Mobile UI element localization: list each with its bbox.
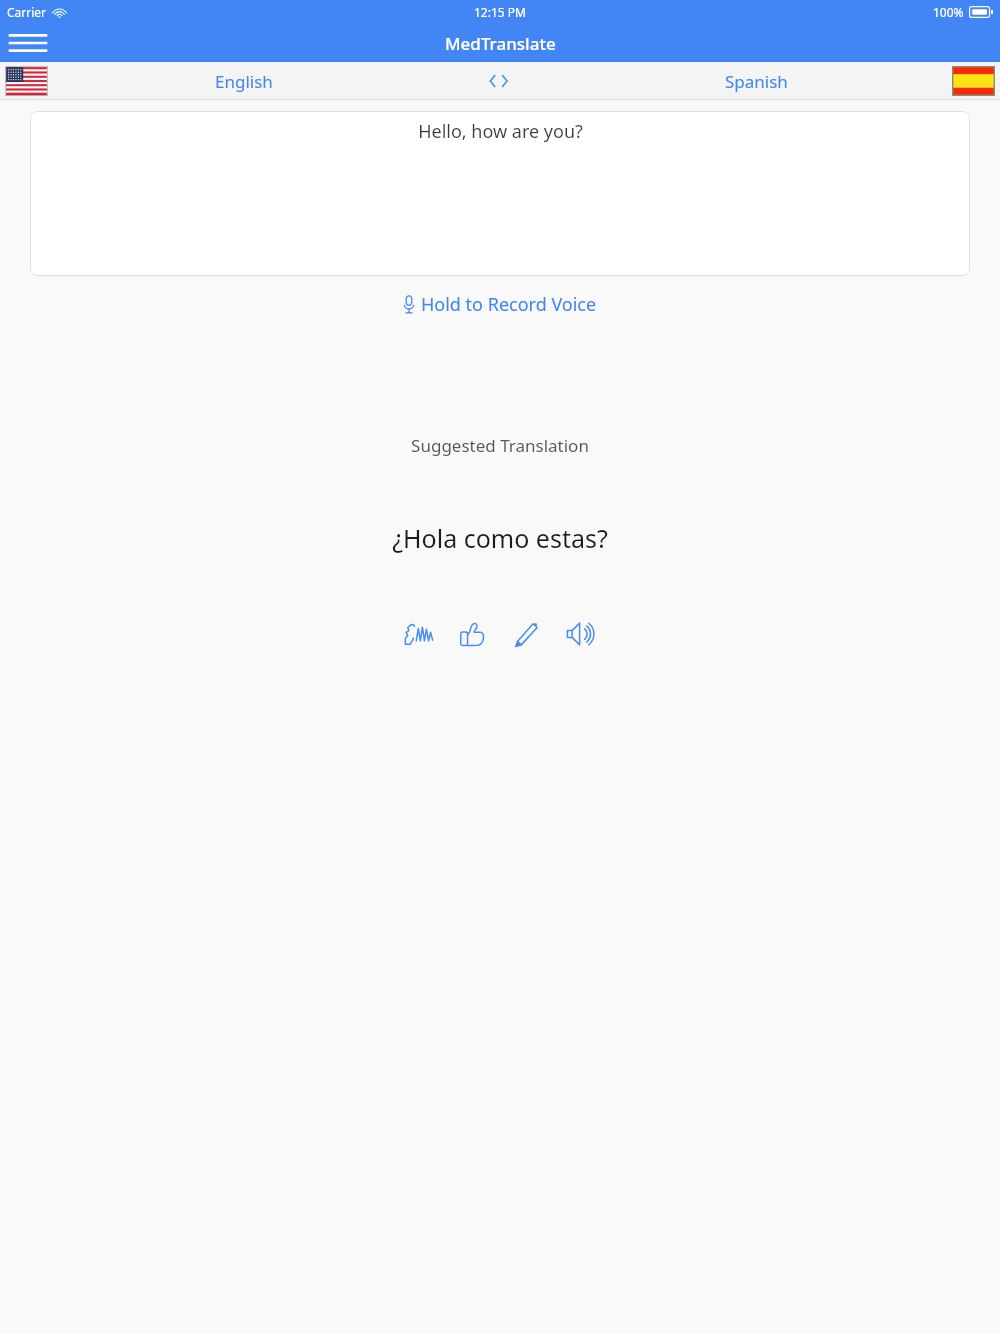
button[interactable]: Speak translation [398, 613, 440, 655]
button[interactable]: English [48, 62, 440, 100]
button[interactable]: Edit translation [506, 613, 548, 655]
staticText: 12:15 PM [474, 4, 526, 20]
staticText: Hold to Record Voice [421, 292, 597, 317]
button[interactable]: Hello, how are you? [30, 111, 970, 276]
staticText: Suggested Translation [0, 434, 1000, 457]
button[interactable]: Target language Spain [952, 66, 995, 96]
staticText: Spanish [725, 70, 788, 93]
staticText: MedTranslate [445, 32, 556, 55]
staticText: English [215, 70, 273, 93]
button[interactable]: Mark as good translation [452, 613, 494, 655]
button[interactable]: Hold to Record Voice [403, 292, 597, 317]
button[interactable]: Play audio [560, 613, 602, 655]
button[interactable]: Menu [6, 26, 50, 60]
button[interactable]: Source language United States [5, 66, 48, 96]
staticText: Hello, how are you? [418, 119, 583, 144]
button[interactable]: Swap languages [440, 62, 560, 100]
staticText: 100% [933, 4, 964, 20]
staticText: Carrier [7, 4, 47, 20]
button[interactable]: Spanish [560, 62, 952, 100]
staticText: ¿Hola como estas? [0, 521, 1000, 555]
